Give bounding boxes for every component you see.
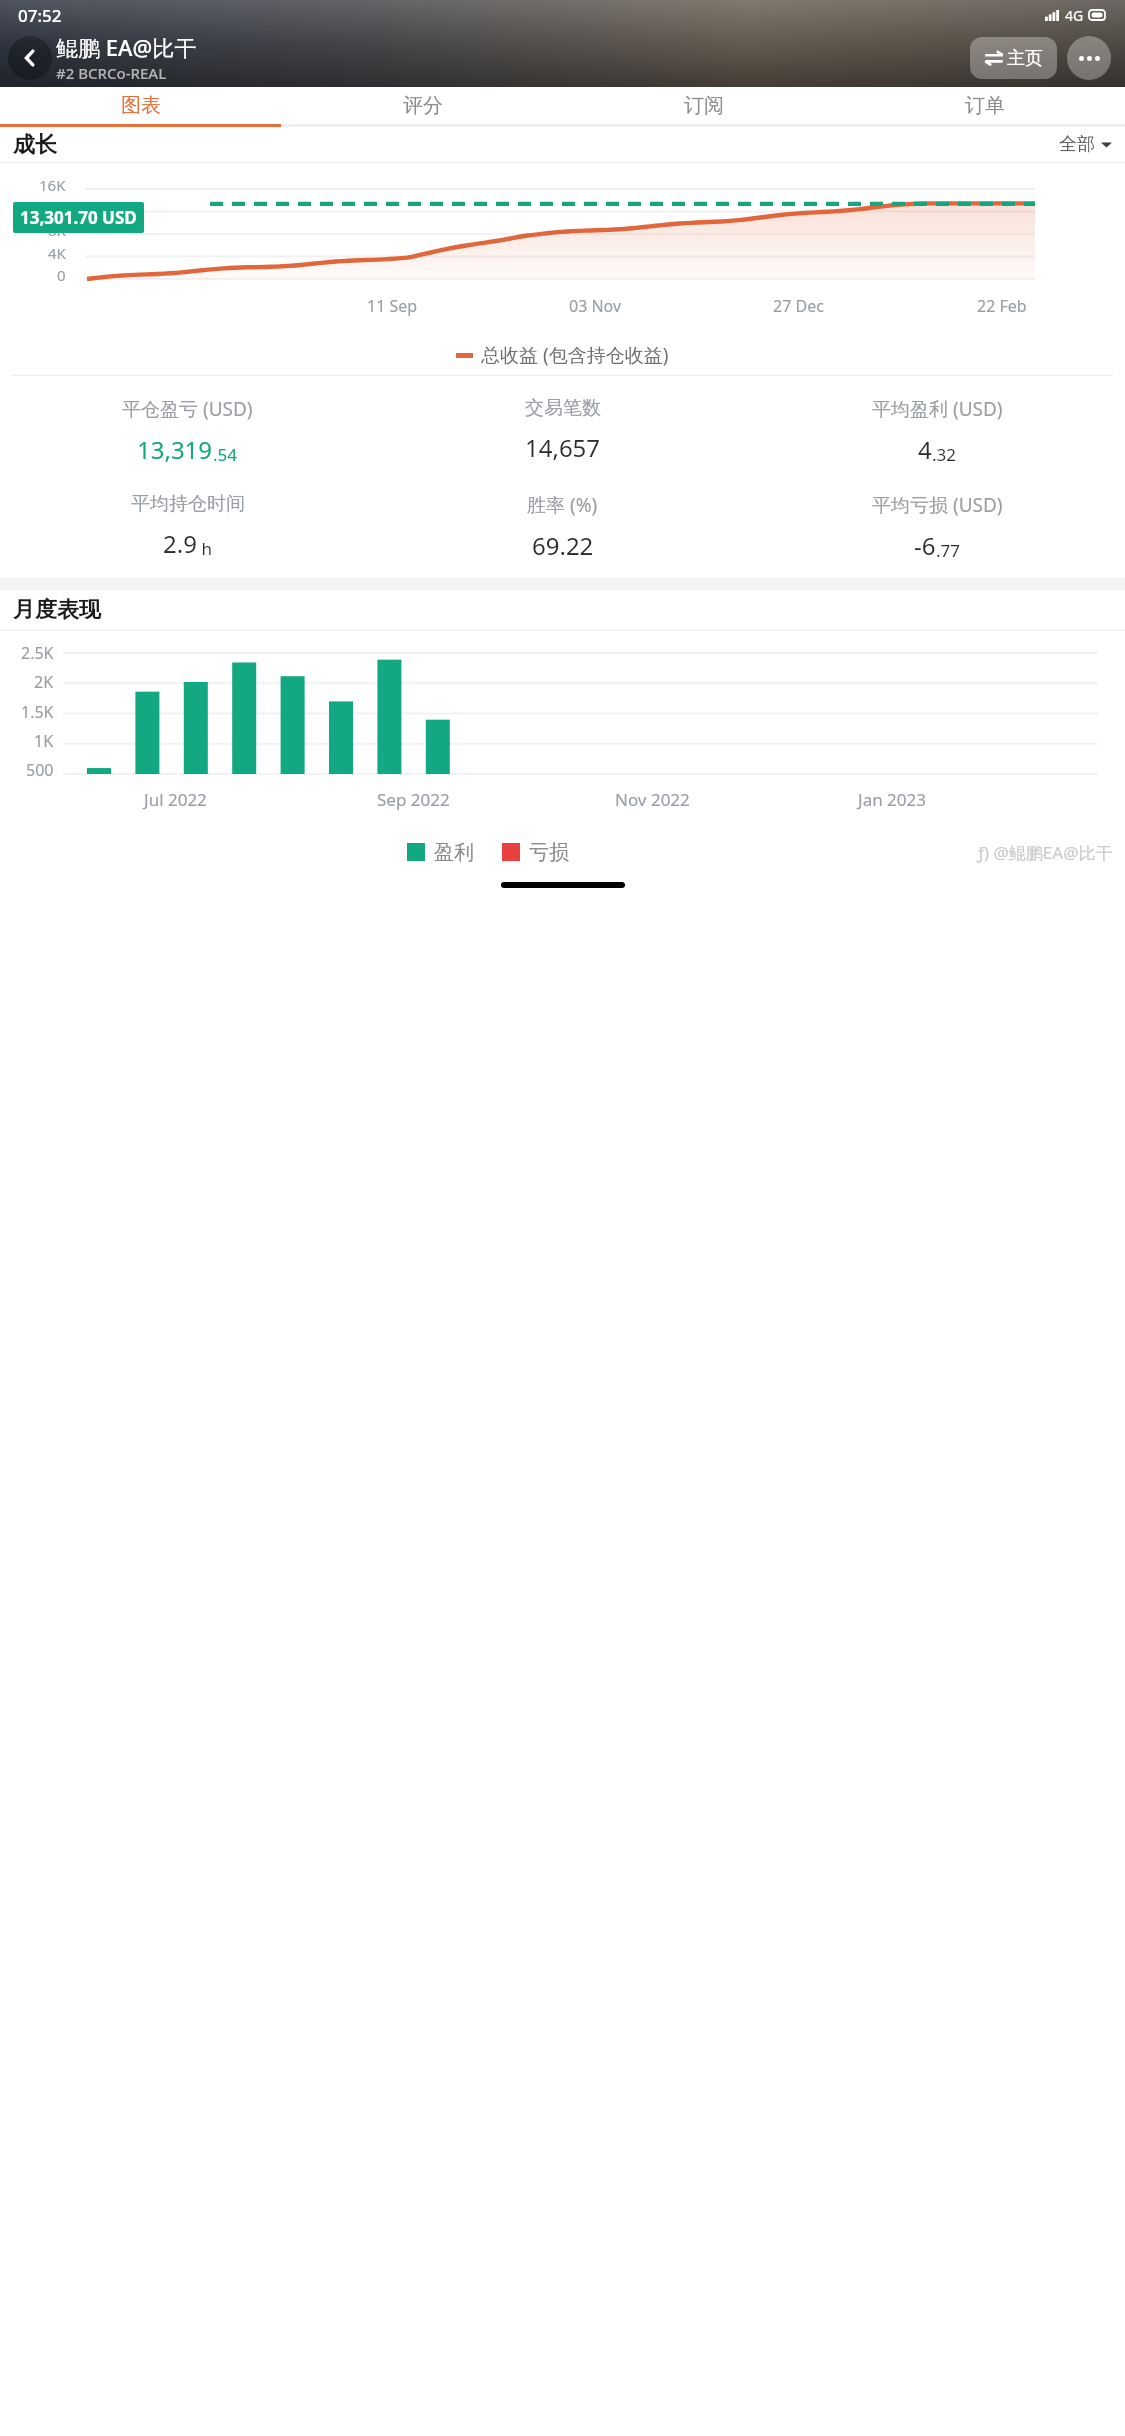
button[interactable]: Back [8,36,52,80]
staticText: 评分 [403,93,443,118]
staticText: ƒ) @鲲鹏EA@比干 [977,841,1113,864]
staticText: 07:52 [18,4,62,27]
staticText: 月度表现 [13,596,101,624]
staticText: 1.5K [21,701,54,723]
staticText: 全部 [1059,133,1095,156]
staticText: 胜率 (%) [527,492,598,518]
staticText: h [197,537,212,560]
staticText: -6 [914,529,936,562]
staticText: 69.22 [532,529,594,562]
staticText: 2.5K [21,642,54,664]
staticText: .54 [213,443,238,466]
staticText: 8K [48,220,66,240]
staticText: .32 [932,443,957,466]
button[interactable]: 图表 [0,87,282,124]
staticText: 1K [34,730,54,752]
staticText: Jan 2023 [858,788,926,811]
staticText: 22 Feb [977,295,1027,317]
staticText: 亏损 [529,840,569,865]
staticText: 500 [26,759,54,781]
staticText: 14,657 [525,431,601,464]
staticText: 主页 [1007,47,1043,70]
staticText: 0 [57,265,66,285]
staticText: 2.9 [163,527,197,560]
staticText: 订阅 [684,93,724,118]
staticText: #2 BCRCo-REAL [56,63,167,83]
button[interactable]: 订单 [844,87,1125,124]
staticText: 成长 [13,131,57,159]
staticText: 13,301.70 USD [20,206,137,229]
staticText: 12K [39,198,66,218]
staticText: 图表 [121,93,161,118]
staticText: 4G [1065,6,1084,25]
staticText: 27 Dec [773,295,824,317]
staticText: Nov 2022 [615,788,690,811]
staticText: 平仓盈亏 (USD) [122,396,253,422]
staticText: 2K [34,671,54,693]
staticText: 03 Nov [569,295,622,317]
staticText: 盈利 [434,840,474,865]
staticText: 交易笔数 [525,396,601,420]
staticText: .77 [936,539,961,562]
staticText: 平均持仓时间 [131,492,245,516]
staticText: 4 [918,433,932,466]
button[interactable]: 主页 [970,37,1057,79]
button[interactable]: 订阅 [563,87,844,124]
staticText: 平均盈利 (USD) [872,396,1003,422]
staticText: 总收益 (包含持仓收益) [481,342,669,368]
button[interactable]: 全部 [1059,133,1112,156]
button[interactable]: More options [1067,36,1111,80]
staticText: 鲲鹏 EA@比干 [56,32,197,62]
staticText: 16K [39,175,66,195]
staticText: 平均亏损 (USD) [872,492,1003,518]
button[interactable]: 评分 [282,87,563,124]
staticText: 11 Sep [367,295,418,317]
staticText: 4K [48,243,66,263]
staticText: Jul 2022 [144,788,207,811]
staticText: Sep 2022 [377,788,450,811]
staticText: 13,319 [137,433,213,466]
staticText: 订单 [965,93,1005,118]
